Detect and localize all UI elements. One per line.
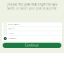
staticText: Premium Plus <box>8 38 17 39</box>
staticText: Standard with ads <box>8 24 20 25</box>
staticText: Standard <box>8 28 15 30</box>
button[interactable]: Standard <box>2 27 62 31</box>
button[interactable]: Standard with ads <box>2 22 62 26</box>
staticText: Continue <box>25 44 39 47</box>
staticText: Switch or cancel your plan at any time <box>7 7 57 10</box>
staticText: Choose the plan that's right for you <box>6 3 57 6</box>
button[interactable]: Continue <box>3 43 61 48</box>
staticText: Premium <box>8 32 14 34</box>
button[interactable]: Premium Plus <box>2 35 62 41</box>
button[interactable]: Premium <box>2 31 62 35</box>
